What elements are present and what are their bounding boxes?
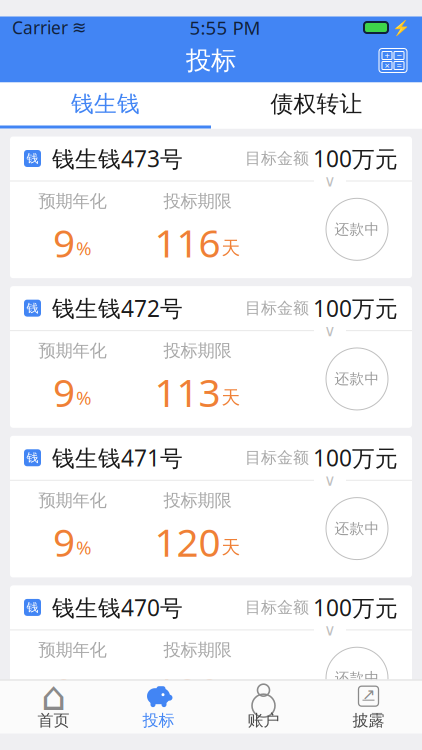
- staticText: 120: [154, 516, 220, 567]
- button[interactable]: 钱: [10, 436, 412, 577]
- staticText: 投标: [186, 45, 236, 76]
- staticText: ∨: [324, 621, 336, 639]
- staticText: 9: [53, 516, 75, 567]
- staticText: ⚡: [392, 19, 410, 36]
- staticText: 100万元: [313, 443, 398, 473]
- staticText: 目标金额: [245, 149, 309, 168]
- staticText: 预期年化: [38, 639, 106, 661]
- staticText: +: [384, 49, 389, 62]
- staticText: ∨: [324, 172, 336, 190]
- staticText: 钱生钱470号: [52, 592, 183, 622]
- button[interactable]: 债权转让: [211, 82, 422, 125]
- staticText: 120: [154, 666, 220, 717]
- staticText: 预期年化: [38, 490, 106, 511]
- staticText: 天: [221, 536, 240, 559]
- button[interactable]: 钱生钱: [0, 82, 211, 125]
- staticText: 钱: [26, 450, 38, 465]
- staticText: 钱生钱473号: [52, 143, 183, 173]
- staticText: 投标期限: [163, 190, 231, 212]
- staticText: 钱: [26, 301, 38, 315]
- staticText: 目标金额: [245, 598, 309, 617]
- staticText: 还款中: [334, 520, 379, 538]
- staticText: 还款中: [334, 669, 379, 687]
- staticText: ↗: [362, 685, 375, 703]
- staticText: 目标金额: [245, 298, 309, 318]
- staticText: 113: [154, 366, 220, 418]
- staticText: 预期年化: [38, 340, 106, 361]
- button[interactable]: 钱: [10, 286, 412, 428]
- staticText: −: [396, 49, 401, 62]
- staticText: %: [76, 385, 92, 410]
- staticText: Carrier: [12, 16, 68, 39]
- staticText: ∨: [324, 471, 336, 489]
- staticText: 投标期限: [163, 490, 231, 511]
- button[interactable]: 钱: [10, 136, 412, 278]
- button[interactable]: 计算器: [378, 45, 422, 75]
- staticText: 钱: [26, 151, 38, 166]
- staticText: ≋: [72, 18, 87, 37]
- button[interactable]: ⌂: [1, 681, 106, 733]
- button[interactable]: 投标: [106, 681, 211, 733]
- staticText: 9: [53, 366, 75, 418]
- staticText: 还款中: [334, 370, 379, 388]
- button[interactable]: 账户: [211, 681, 316, 733]
- staticText: 9: [53, 666, 75, 717]
- staticText: 账户: [247, 711, 279, 730]
- staticText: 天: [221, 236, 240, 259]
- staticText: 5:55 PM: [189, 15, 260, 40]
- staticText: =: [396, 59, 401, 72]
- staticText: 9: [53, 217, 75, 268]
- staticText: 116: [154, 217, 220, 268]
- staticText: 目标金额: [245, 448, 309, 468]
- staticText: 债权转让: [270, 90, 362, 118]
- staticText: 天: [221, 386, 240, 409]
- staticText: ×: [384, 59, 389, 72]
- staticText: 预期年化: [38, 190, 106, 212]
- staticText: 投标期限: [163, 340, 231, 361]
- staticText: 钱生钱471号: [52, 443, 183, 473]
- button[interactable]: ↗: [316, 681, 421, 733]
- staticText: 钱: [26, 600, 38, 615]
- staticText: 钱生钱472号: [52, 293, 183, 323]
- staticText: 首页: [37, 711, 69, 730]
- staticText: ⌂: [41, 673, 66, 719]
- staticText: 披露: [352, 711, 384, 730]
- staticText: 100万元: [313, 143, 398, 173]
- staticText: %: [76, 535, 92, 560]
- staticText: 100万元: [313, 592, 398, 622]
- staticText: 100万元: [313, 293, 398, 323]
- staticText: 还款中: [334, 220, 379, 238]
- staticText: ∨: [324, 322, 336, 340]
- staticText: 投标期限: [163, 639, 231, 661]
- button[interactable]: 钱: [10, 585, 412, 727]
- staticText: %: [76, 236, 92, 260]
- staticText: 投标: [142, 711, 174, 730]
- staticText: 钱生钱: [71, 90, 140, 118]
